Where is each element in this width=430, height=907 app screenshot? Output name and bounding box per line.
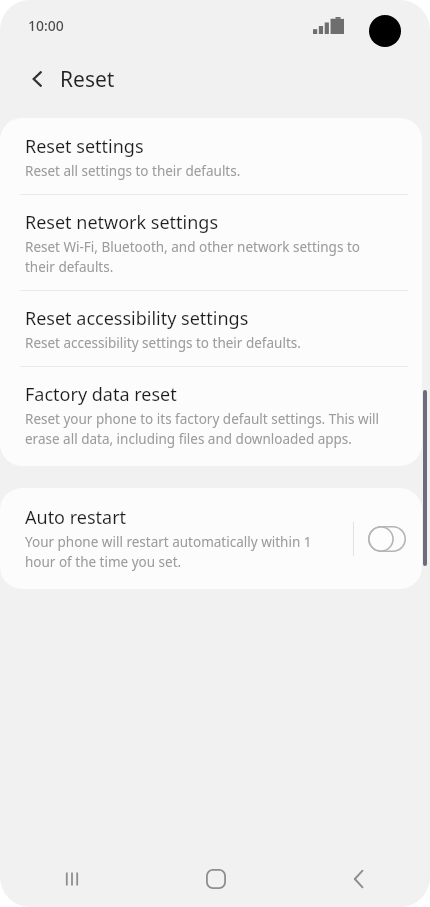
staticText: Your phone will restart automatically wi…: [25, 533, 341, 571]
staticText: Reset accessibility settings to their de…: [25, 334, 301, 352]
button[interactable]: Reset settings: [0, 118, 422, 194]
button[interactable]: Back: [287, 851, 430, 907]
button[interactable]: Auto restart: [0, 488, 422, 589]
button[interactable]: Auto restart toggle: [366, 522, 408, 556]
staticText: Reset accessibility settings: [25, 306, 249, 331]
button[interactable]: Recent apps: [0, 851, 144, 907]
staticText: Reset: [60, 65, 115, 94]
staticText: Reset network settings: [25, 210, 219, 235]
button[interactable]: Back: [18, 59, 58, 99]
button[interactable]: Factory data reset: [0, 367, 422, 466]
staticText: Reset all settings to their defaults.: [25, 162, 241, 180]
staticText: Auto restart: [25, 505, 127, 530]
staticText: Reset settings: [25, 134, 144, 159]
button[interactable]: Home: [144, 851, 287, 907]
staticText: Reset your phone to its factory default …: [25, 410, 392, 448]
staticText: Factory data reset: [25, 382, 177, 407]
staticText: Reset Wi-Fi, Bluetooth, and other networ…: [25, 238, 392, 276]
button[interactable]: Reset accessibility settings: [0, 291, 422, 366]
staticText: 10:00: [28, 16, 64, 35]
button[interactable]: Reset network settings: [0, 195, 422, 290]
